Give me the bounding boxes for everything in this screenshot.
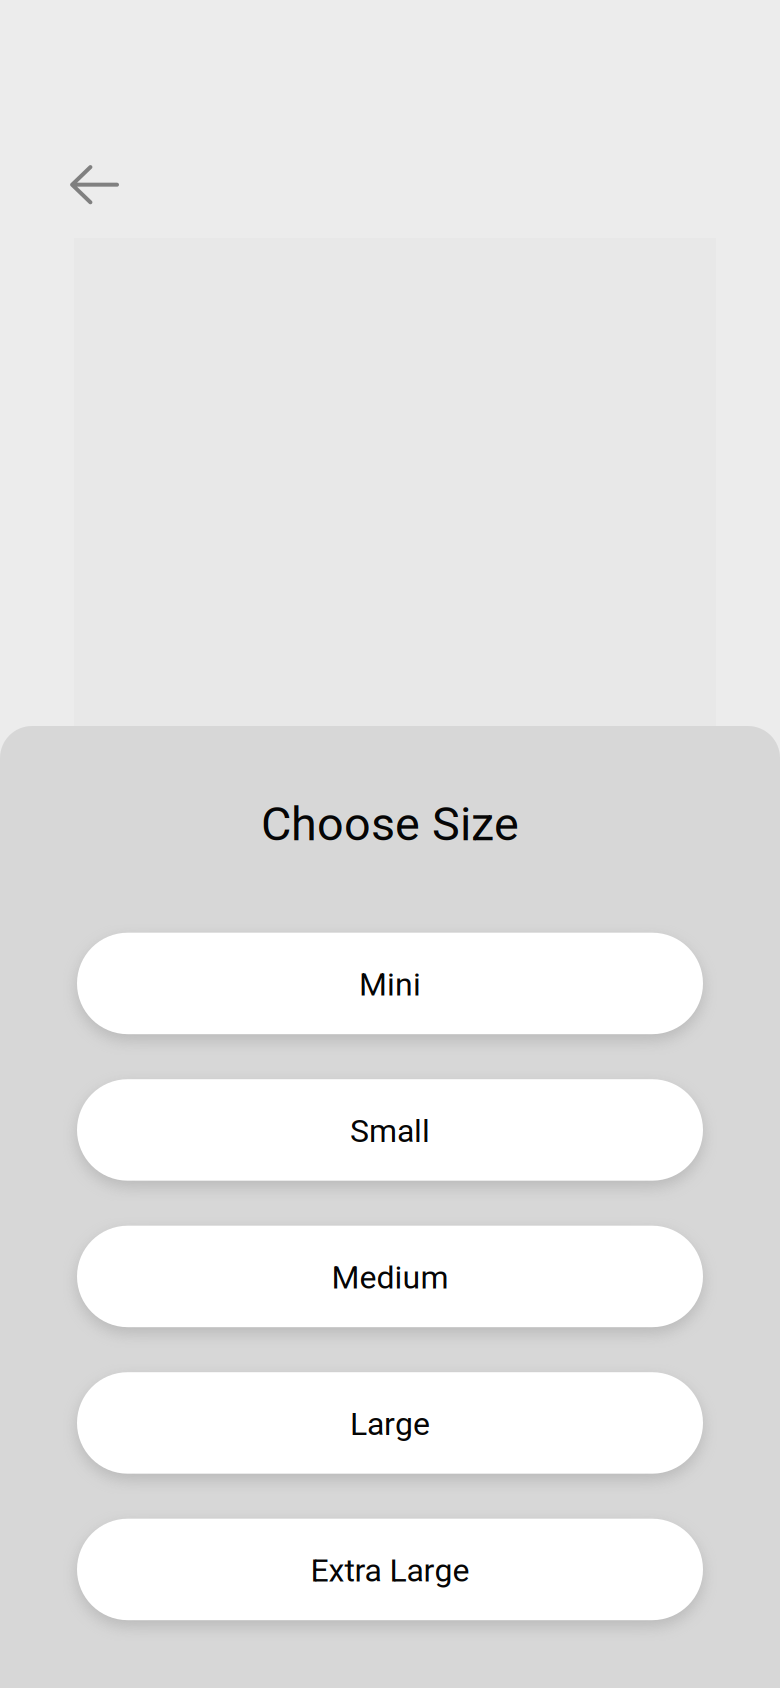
button[interactable]: Mini: [77, 933, 703, 1034]
staticText: Choose Size: [261, 797, 519, 852]
staticText: Mini: [359, 966, 421, 1003]
staticText: Medium: [331, 1259, 448, 1296]
button[interactable]: Medium: [77, 1226, 703, 1327]
staticText: Small: [350, 1112, 430, 1150]
button[interactable]: Back: [70, 165, 119, 204]
staticText: Large: [350, 1405, 430, 1443]
button[interactable]: Small: [77, 1079, 703, 1181]
staticText: Extra Large: [310, 1552, 469, 1589]
button[interactable]: Large: [77, 1372, 703, 1474]
button[interactable]: Extra Large: [77, 1519, 703, 1620]
